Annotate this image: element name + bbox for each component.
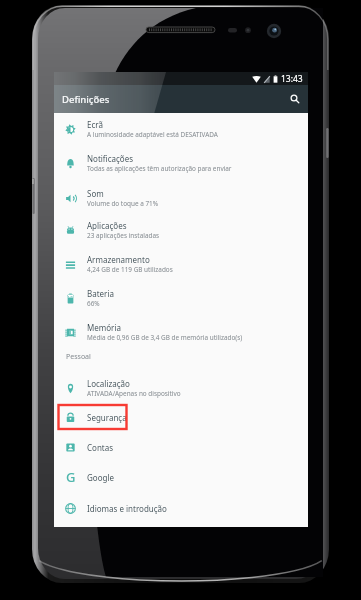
staticText: Aplicações [87,220,127,231]
button[interactable]: Memória [54,315,308,349]
button[interactable]: Aplicações [54,213,308,247]
button[interactable]: Armazenamento [54,247,308,281]
staticText: 66% [87,299,100,308]
staticText: Idiomas e introdução [87,503,167,514]
button[interactable]: Pesquisar [285,89,305,109]
button[interactable]: Som [54,181,308,215]
button[interactable]: G [54,462,308,492]
staticText: Armazenamento [87,254,150,265]
staticText: Pessoal [66,352,91,362]
staticText: Localização [87,378,130,389]
staticText: Ecrã [87,119,103,130]
staticText: Bateria [87,288,114,299]
staticText: Notificações [87,153,134,164]
staticText: Som [87,188,104,199]
staticText: 4,24 GB de 119 GB utilizados [87,265,173,274]
button[interactable]: Ecrã [54,112,308,146]
staticText: ATIVADA/Apenas no dispositivo [87,389,181,398]
staticText: 13:43 [281,73,303,85]
staticText: Definições [62,93,110,106]
button[interactable]: Bateria [54,281,308,315]
button[interactable]: Localização [54,371,308,405]
button[interactable]: Segurança [54,402,308,432]
staticText: Todas as aplicações têm autorização para… [87,164,232,173]
staticText: Google [87,472,114,483]
staticText: A luminosidade adaptável está DESATIVADA [87,130,218,139]
button[interactable]: Idiomas e introdução [54,493,308,523]
staticText: 23 aplicações instaladas [87,231,160,240]
button[interactable]: Notificações [54,146,308,180]
staticText: Contas [87,442,114,453]
staticText: Volume do toque a 71% [87,199,159,208]
staticText: Memória [87,322,121,333]
staticText: Segurança [87,412,127,423]
staticText: Média de 0,96 GB de 3,4 GB de memória ut… [87,333,243,342]
staticText: G [66,468,76,486]
button[interactable]: Contas [54,432,308,462]
